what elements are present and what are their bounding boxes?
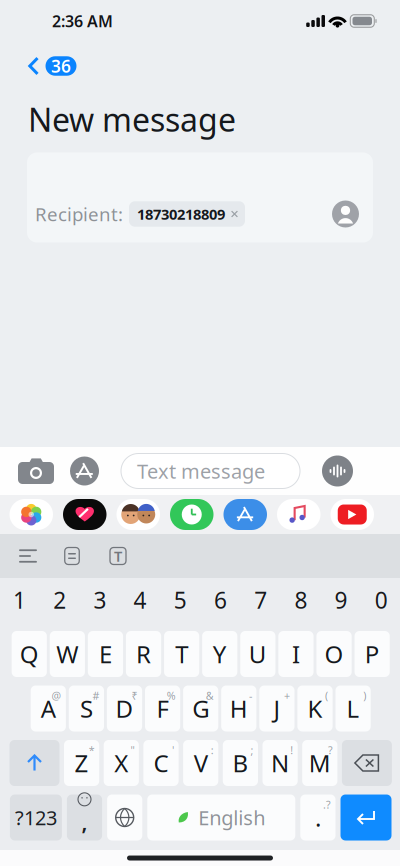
button[interactable]: E	[88, 631, 123, 677]
button[interactable]: Clock	[170, 499, 213, 530]
button[interactable]: V	[183, 740, 218, 786]
button[interactable]: N	[262, 740, 298, 786]
button[interactable]: F	[145, 685, 180, 731]
staticText: '	[172, 743, 174, 757]
staticText: U	[249, 638, 267, 670]
staticText: 2	[53, 585, 66, 615]
staticText: %	[167, 688, 176, 703]
button[interactable]: A	[31, 685, 66, 731]
button[interactable]: U	[240, 631, 275, 677]
button[interactable]: Back to messages	[26, 51, 78, 81]
staticText: 18730218809	[137, 204, 225, 224]
button[interactable]: Text tool	[107, 545, 129, 567]
staticText: G	[192, 693, 209, 724]
button[interactable]: W	[50, 631, 85, 677]
staticText: -	[249, 688, 252, 703]
staticText: 9	[335, 585, 348, 615]
staticText: :	[211, 743, 214, 757]
button[interactable]: Clipboard	[61, 545, 83, 567]
button[interactable]: Fitness	[63, 499, 106, 530]
staticText: &	[206, 688, 214, 703]
staticText: 8	[294, 585, 307, 615]
button[interactable]: D	[107, 685, 142, 731]
button[interactable]: O	[316, 631, 352, 677]
staticText: ,	[81, 808, 87, 836]
button[interactable]: Music	[277, 499, 320, 530]
staticText: 2:36 AM	[52, 10, 113, 32]
staticText: (	[325, 688, 328, 703]
staticText: @	[51, 688, 61, 703]
staticText: 3	[93, 585, 106, 615]
staticText: 0	[375, 585, 388, 615]
button[interactable]: Apps	[68, 452, 101, 489]
button[interactable]: 5	[160, 586, 200, 614]
button[interactable]: 9	[321, 586, 361, 614]
button[interactable]: K	[297, 685, 333, 731]
button[interactable]: Camera	[16, 454, 56, 488]
button[interactable]: Delete	[342, 740, 392, 786]
staticText: O	[325, 638, 344, 670]
staticText: #	[92, 688, 99, 703]
button[interactable]: M	[302, 740, 337, 786]
button[interactable]: 1	[0, 586, 40, 614]
button[interactable]: Space, English	[147, 794, 295, 840]
button[interactable]: G	[183, 685, 218, 731]
button[interactable]: Record audio message	[320, 451, 355, 490]
button[interactable]: 6	[200, 586, 241, 614]
button[interactable]: Shift	[9, 740, 59, 786]
button[interactable]: 18730218809	[129, 201, 245, 227]
button[interactable]: S	[69, 685, 104, 731]
staticText: ;	[250, 743, 253, 757]
staticText: Q	[20, 638, 39, 670]
button[interactable]: Photos	[9, 499, 53, 530]
button[interactable]: L	[335, 685, 371, 731]
button[interactable]: 4	[120, 586, 160, 614]
staticText: )	[363, 688, 366, 703]
button[interactable]: C	[143, 740, 179, 786]
staticText: ₹	[132, 688, 138, 703]
button[interactable]: .	[300, 794, 335, 840]
staticText: S	[80, 693, 93, 724]
button[interactable]: 2	[40, 586, 80, 614]
button[interactable]: App Store	[223, 499, 267, 530]
button[interactable]: 3	[80, 586, 120, 614]
button[interactable]: Text formatting	[19, 545, 37, 567]
button[interactable]: ?123	[10, 794, 62, 840]
button[interactable]: R	[126, 631, 161, 677]
button[interactable]: Q	[12, 631, 47, 677]
button[interactable]: P	[355, 631, 390, 677]
button[interactable]: Text message	[121, 453, 300, 488]
staticText: N	[271, 747, 289, 779]
button[interactable]: Send	[340, 794, 391, 840]
button[interactable]: H	[221, 685, 256, 731]
staticText: *	[89, 743, 95, 757]
button[interactable]: Add contact	[332, 200, 359, 227]
staticText: +	[284, 688, 290, 703]
staticText: .?	[323, 797, 331, 812]
staticText: 36	[51, 54, 71, 77]
staticText: X	[114, 747, 128, 779]
button[interactable]: Y	[202, 631, 237, 677]
button[interactable]: I	[278, 631, 314, 677]
button[interactable]: X	[104, 740, 139, 786]
staticText: W	[56, 638, 78, 670]
staticText: M	[309, 747, 331, 779]
button[interactable]: Z	[64, 740, 99, 786]
button[interactable]: Switch keyboard language	[107, 794, 142, 840]
button[interactable]: Comma and emoji	[67, 794, 102, 840]
button[interactable]: T	[164, 631, 199, 677]
button[interactable]: 8	[281, 586, 321, 614]
staticText: !	[290, 743, 293, 757]
button[interactable]: 0	[361, 586, 400, 614]
button[interactable]: J	[259, 685, 294, 731]
staticText: New message	[28, 98, 236, 140]
button[interactable]: 7	[241, 586, 281, 614]
staticText: .	[315, 802, 321, 833]
button[interactable]: B	[223, 740, 258, 786]
staticText: T	[175, 638, 188, 670]
staticText: J	[273, 693, 280, 724]
staticText: V	[194, 747, 208, 779]
button[interactable]: YouTube	[330, 499, 374, 530]
staticText: P	[365, 638, 380, 670]
button[interactable]: Memoji	[116, 499, 160, 530]
